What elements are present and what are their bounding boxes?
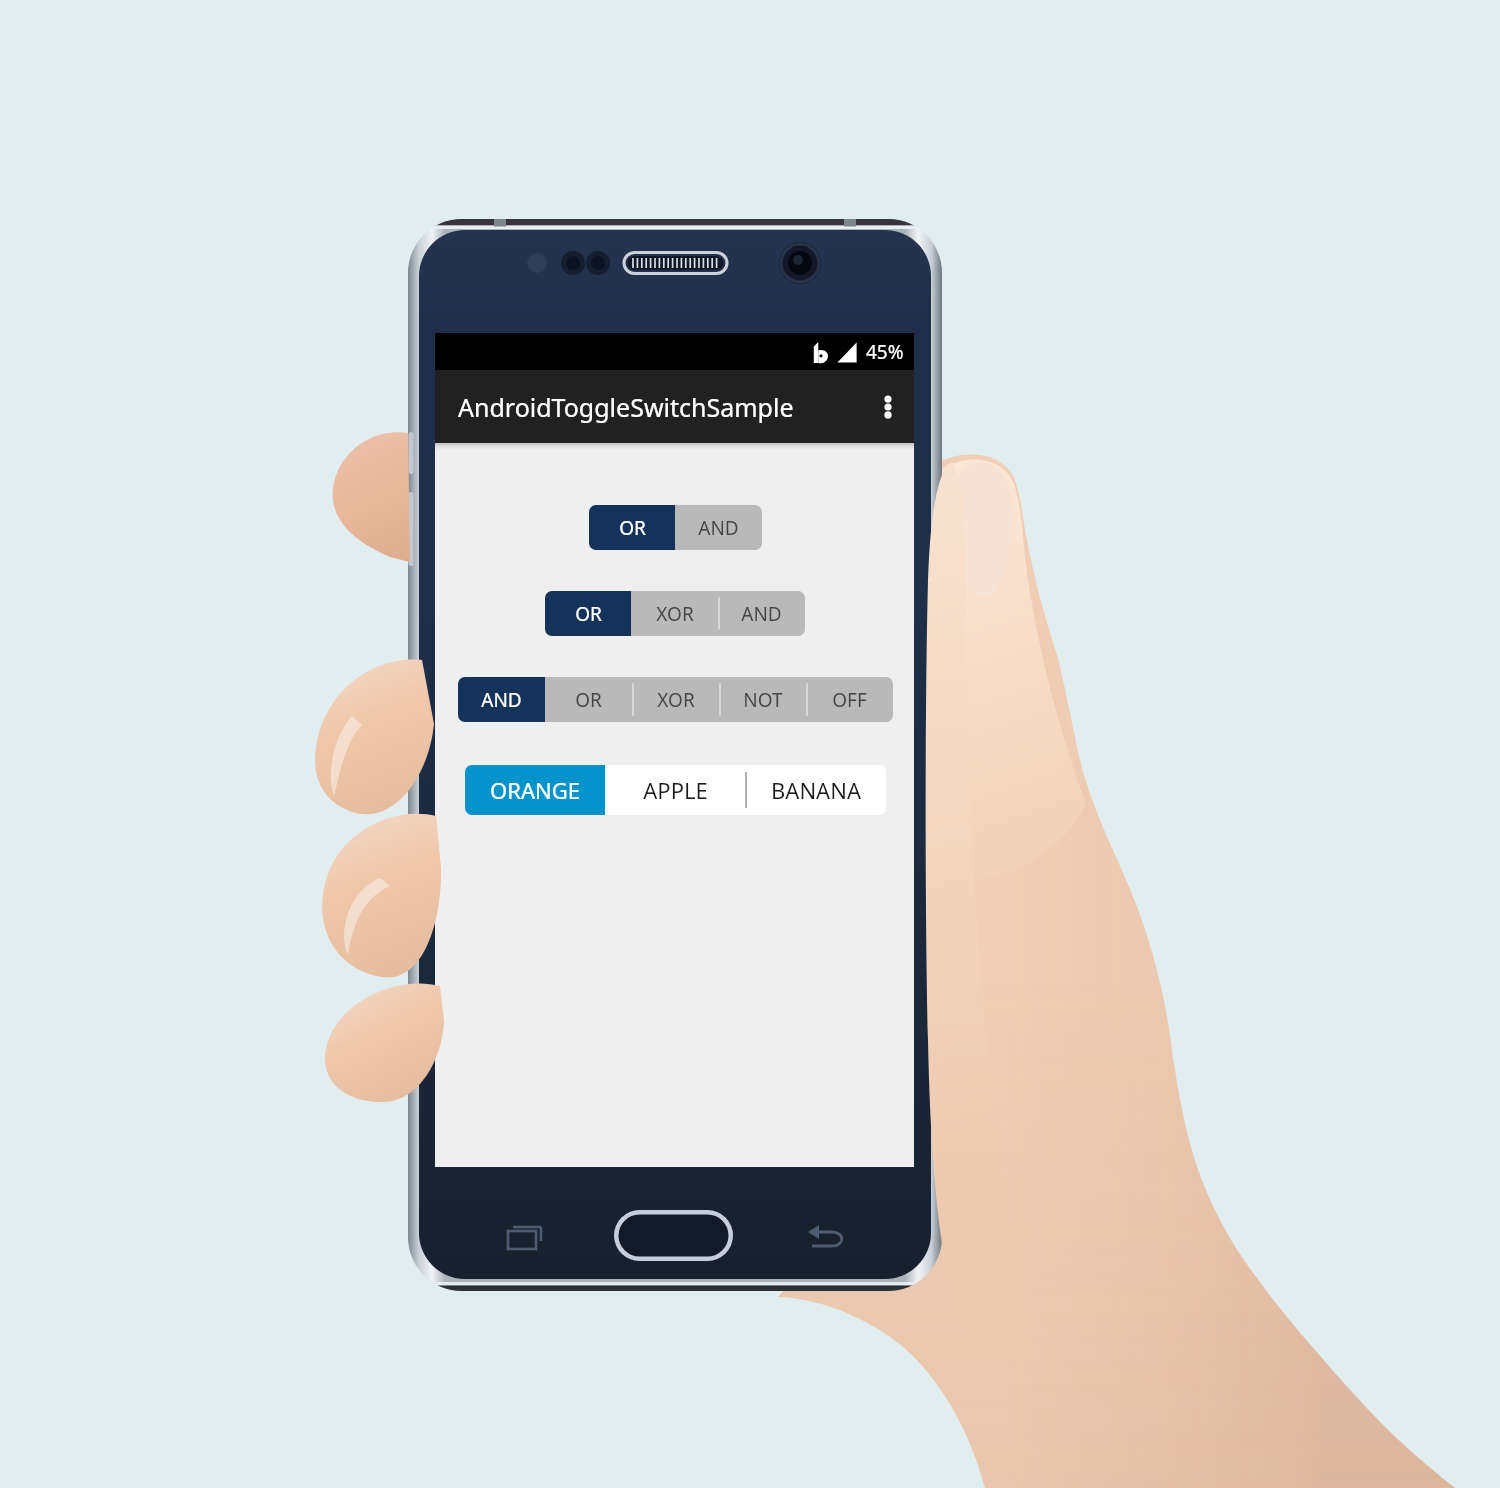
button[interactable]: NOT <box>719 677 806 722</box>
button[interactable]: APPLE <box>605 765 745 815</box>
button[interactable]: More options <box>862 381 914 433</box>
staticText: AND <box>741 601 782 627</box>
staticText: OR <box>619 515 646 541</box>
staticText: APPLE <box>643 775 708 805</box>
button[interactable]: AND <box>458 677 545 722</box>
button[interactable]: OR <box>589 505 675 550</box>
staticText: BANANA <box>771 775 861 805</box>
staticText: OFF <box>832 687 867 713</box>
button[interactable]: OR <box>545 591 631 636</box>
staticText: XOR <box>657 687 695 713</box>
button[interactable]: XOR <box>631 591 718 636</box>
button[interactable]: AND <box>675 505 762 550</box>
button[interactable]: OFF <box>806 677 893 722</box>
staticText: 45% <box>866 339 904 365</box>
staticText: NOT <box>743 687 783 713</box>
staticText: OR <box>575 601 602 627</box>
button[interactable]: OR <box>545 677 632 722</box>
button[interactable]: AND <box>718 591 805 636</box>
button[interactable]: XOR <box>632 677 719 722</box>
staticText: XOR <box>656 601 694 627</box>
staticText: AND <box>481 687 522 713</box>
staticText: AND <box>698 515 739 541</box>
button[interactable]: BANANA <box>745 765 886 815</box>
staticText: OR <box>575 687 602 713</box>
staticText: AndroidToggleSwitchSample <box>458 390 794 424</box>
staticText: ORANGE <box>490 775 580 805</box>
button[interactable]: ORANGE <box>465 765 605 815</box>
